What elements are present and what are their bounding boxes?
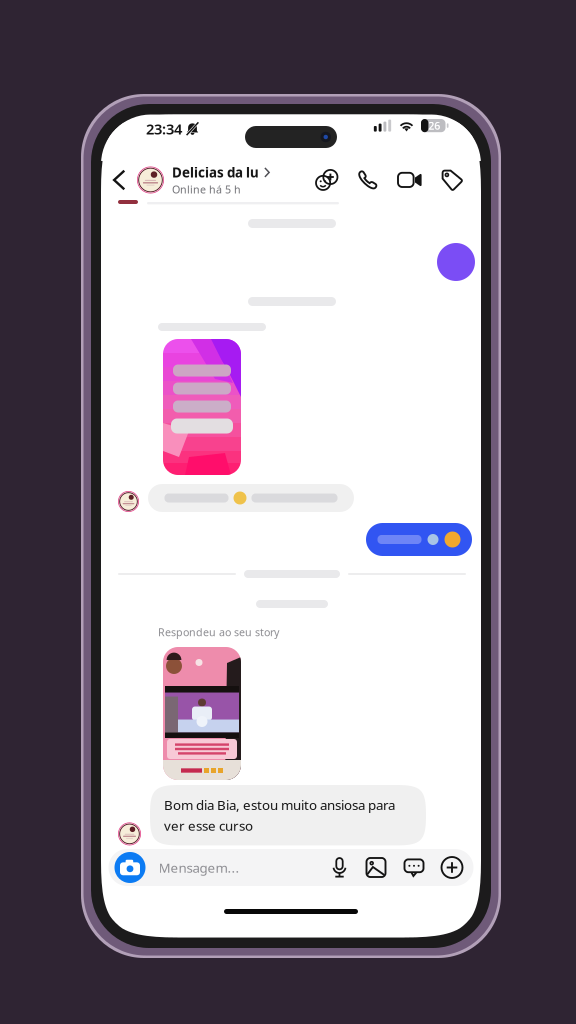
staticText: Mensagem... (158, 859, 239, 876)
button[interactable]: Photos (365, 857, 386, 878)
button[interactable]: Voice message (330, 857, 348, 878)
button[interactable]: More (441, 857, 462, 878)
button[interactable]: Audio call (357, 169, 378, 191)
button[interactable]: Back (101, 161, 137, 199)
staticText: ver esse curso (164, 817, 253, 834)
staticText: Delicias da lu (172, 164, 259, 181)
staticText: Bom dia Bia, estou muito ansiosa para (164, 796, 395, 814)
staticText: Online há 5 h (172, 182, 241, 196)
button[interactable]: Stickers (403, 858, 424, 877)
button[interactable]: Delicias da lu (137, 161, 270, 199)
button[interactable]: Tag (441, 169, 463, 191)
staticText: 26 (428, 118, 440, 133)
button[interactable]: Camera (114, 852, 145, 883)
staticText: 23:34 (146, 119, 182, 138)
staticText: Respondeu ao seu story (158, 625, 279, 639)
button[interactable]: Video call (397, 171, 422, 189)
button[interactable]: Mensagem... (145, 849, 330, 886)
button[interactable]: Add people (315, 169, 338, 191)
